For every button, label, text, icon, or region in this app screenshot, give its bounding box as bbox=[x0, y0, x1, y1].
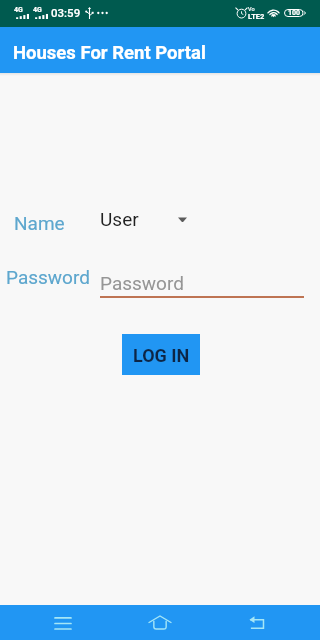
staticText: 4G bbox=[14, 6, 23, 14]
staticText: Houses For Rent Portal bbox=[13, 42, 206, 64]
staticText: 03:59 bbox=[51, 6, 81, 19]
staticText: 4G bbox=[33, 6, 42, 14]
button[interactable]: Home bbox=[136, 605, 184, 640]
staticText: LTE2 bbox=[248, 12, 265, 21]
staticText: 100 bbox=[288, 9, 301, 17]
staticText: Password bbox=[100, 272, 184, 294]
staticText: Vo bbox=[248, 6, 255, 12]
button[interactable]: Password bbox=[100, 272, 304, 298]
staticText: User bbox=[100, 208, 139, 230]
button[interactable]: LOG IN bbox=[122, 334, 200, 375]
staticText: Password bbox=[6, 266, 90, 288]
button[interactable]: Recent apps bbox=[39, 605, 87, 640]
button[interactable]: User bbox=[100, 204, 187, 234]
button[interactable]: Back bbox=[233, 605, 281, 640]
staticText: LOG IN bbox=[133, 345, 190, 366]
staticText: Name bbox=[14, 212, 65, 234]
